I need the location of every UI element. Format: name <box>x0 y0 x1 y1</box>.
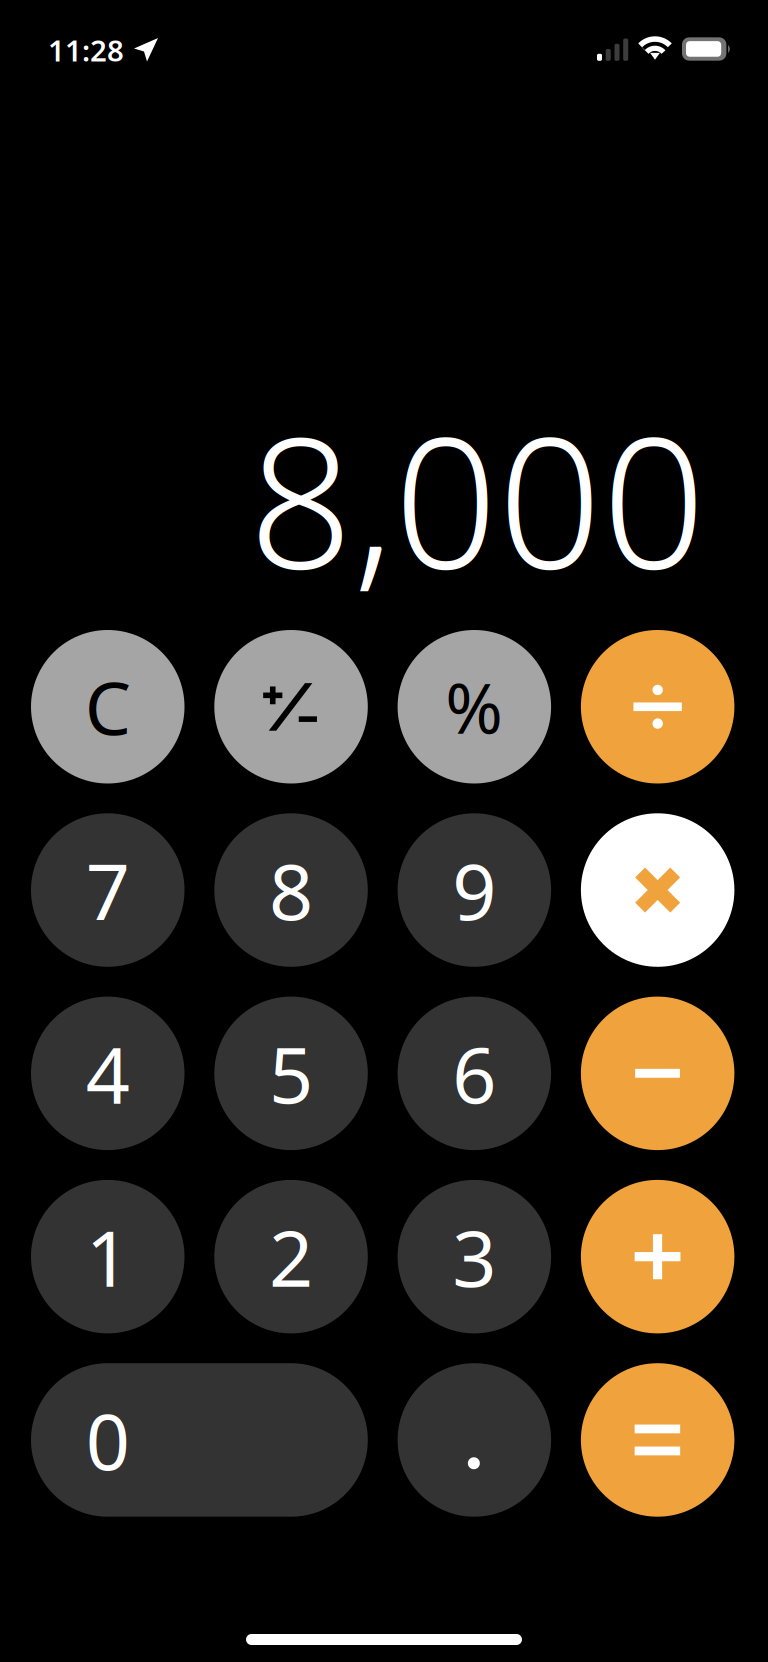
staticText: 8,000 <box>249 378 706 618</box>
button[interactable]: 1 <box>31 1180 184 1333</box>
staticText: 9 <box>452 839 496 941</box>
staticText: 8 <box>269 839 313 941</box>
button[interactable]: 5 <box>214 997 368 1150</box>
button[interactable]: 9 <box>398 813 551 967</box>
button[interactable]: 0 <box>31 1363 368 1517</box>
staticText: 0 <box>86 1389 130 1491</box>
staticText: 2 <box>269 1205 313 1308</box>
button[interactable]: 2 <box>214 1180 368 1333</box>
staticText: 4 <box>86 1022 130 1125</box>
button[interactable]: Multiply <box>581 813 734 967</box>
staticText: % <box>445 661 503 753</box>
button[interactable]: Subtract <box>581 997 734 1150</box>
staticText: 1 <box>86 1205 130 1308</box>
button[interactable]: Toggle sign <box>214 630 368 783</box>
button[interactable]: % <box>398 630 551 783</box>
button[interactable]: 3 <box>398 1180 551 1333</box>
staticText: 11:28 <box>48 30 124 69</box>
button[interactable]: Add <box>581 1180 734 1333</box>
button[interactable]: Equals <box>581 1363 734 1517</box>
button[interactable]: 4 <box>31 997 184 1150</box>
button[interactable]: 6 <box>398 997 551 1150</box>
staticText: 3 <box>452 1205 496 1308</box>
button[interactable]: 8 <box>214 813 368 967</box>
staticText: 6 <box>452 1022 496 1125</box>
button[interactable]: C <box>31 630 184 783</box>
staticText: C <box>85 658 131 755</box>
button[interactable]: Decimal point <box>398 1363 551 1517</box>
staticText: 5 <box>269 1022 313 1125</box>
staticText: 7 <box>86 839 130 941</box>
button[interactable]: 7 <box>31 813 184 967</box>
button[interactable]: Divide <box>581 630 734 783</box>
